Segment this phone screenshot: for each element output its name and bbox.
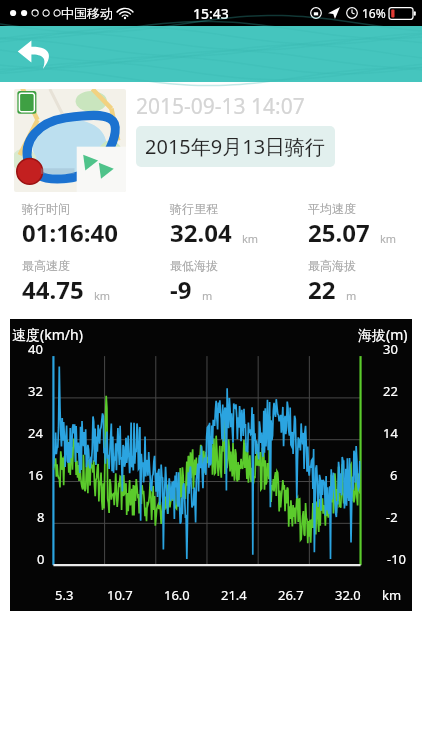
staticText: 32.0 bbox=[335, 586, 361, 604]
staticText: 最高海拔 bbox=[308, 258, 356, 273]
staticText: 21.4 bbox=[221, 586, 247, 604]
staticText: 8 bbox=[37, 508, 45, 526]
staticText: 24 bbox=[28, 424, 43, 442]
staticText: 16 bbox=[28, 466, 43, 484]
staticText: 骑行里程 bbox=[170, 201, 218, 216]
staticText: 0 bbox=[37, 550, 45, 568]
staticText: 14 bbox=[383, 424, 398, 442]
staticText: 最高速度 bbox=[22, 258, 70, 273]
staticText: 40 bbox=[28, 340, 43, 358]
staticText: 44.75 bbox=[22, 273, 84, 306]
staticText: 16% bbox=[362, 5, 386, 21]
staticText: -2 bbox=[386, 508, 398, 526]
staticText: 骑行时间 bbox=[22, 201, 70, 216]
staticText: 最低海拔 bbox=[170, 258, 218, 273]
staticText: 32.04 bbox=[170, 216, 232, 249]
staticText: km bbox=[242, 231, 259, 246]
staticText: 26.7 bbox=[278, 586, 304, 604]
staticText: 中国移动 bbox=[61, 5, 113, 21]
button[interactable]: Speed and altitude chart bbox=[10, 319, 412, 611]
staticText: 32 bbox=[28, 382, 43, 400]
staticText: 30 bbox=[383, 340, 398, 358]
staticText: 平均速度 bbox=[308, 201, 356, 216]
staticText: m bbox=[346, 288, 357, 303]
button[interactable]: Route map bbox=[14, 89, 126, 192]
staticText: km bbox=[94, 288, 111, 303]
staticText: 16.0 bbox=[164, 586, 190, 604]
staticText: 海拔(m) bbox=[358, 325, 408, 344]
staticText: km bbox=[380, 231, 397, 246]
staticText: 2015-09-13 14:07 bbox=[136, 92, 305, 121]
staticText: 5.3 bbox=[55, 586, 74, 604]
staticText: 25.07 bbox=[308, 216, 370, 249]
staticText: 10.7 bbox=[107, 586, 133, 604]
button[interactable]: 2015年9月13日骑行 bbox=[136, 126, 335, 167]
staticText: -10 bbox=[387, 550, 407, 568]
staticText: 速度(km/h) bbox=[12, 325, 83, 344]
button[interactable]: Back bbox=[10, 29, 60, 79]
staticText: km bbox=[382, 586, 402, 604]
staticText: 22 bbox=[308, 273, 336, 306]
staticText: 01:16:40 bbox=[22, 216, 118, 249]
staticText: 15:43 bbox=[193, 4, 229, 23]
staticText: 22 bbox=[383, 382, 398, 400]
staticText: -9 bbox=[170, 273, 192, 306]
staticText: m bbox=[202, 288, 213, 303]
staticText: 6 bbox=[390, 466, 398, 484]
staticText: 2015年9月13日骑行 bbox=[145, 133, 326, 160]
